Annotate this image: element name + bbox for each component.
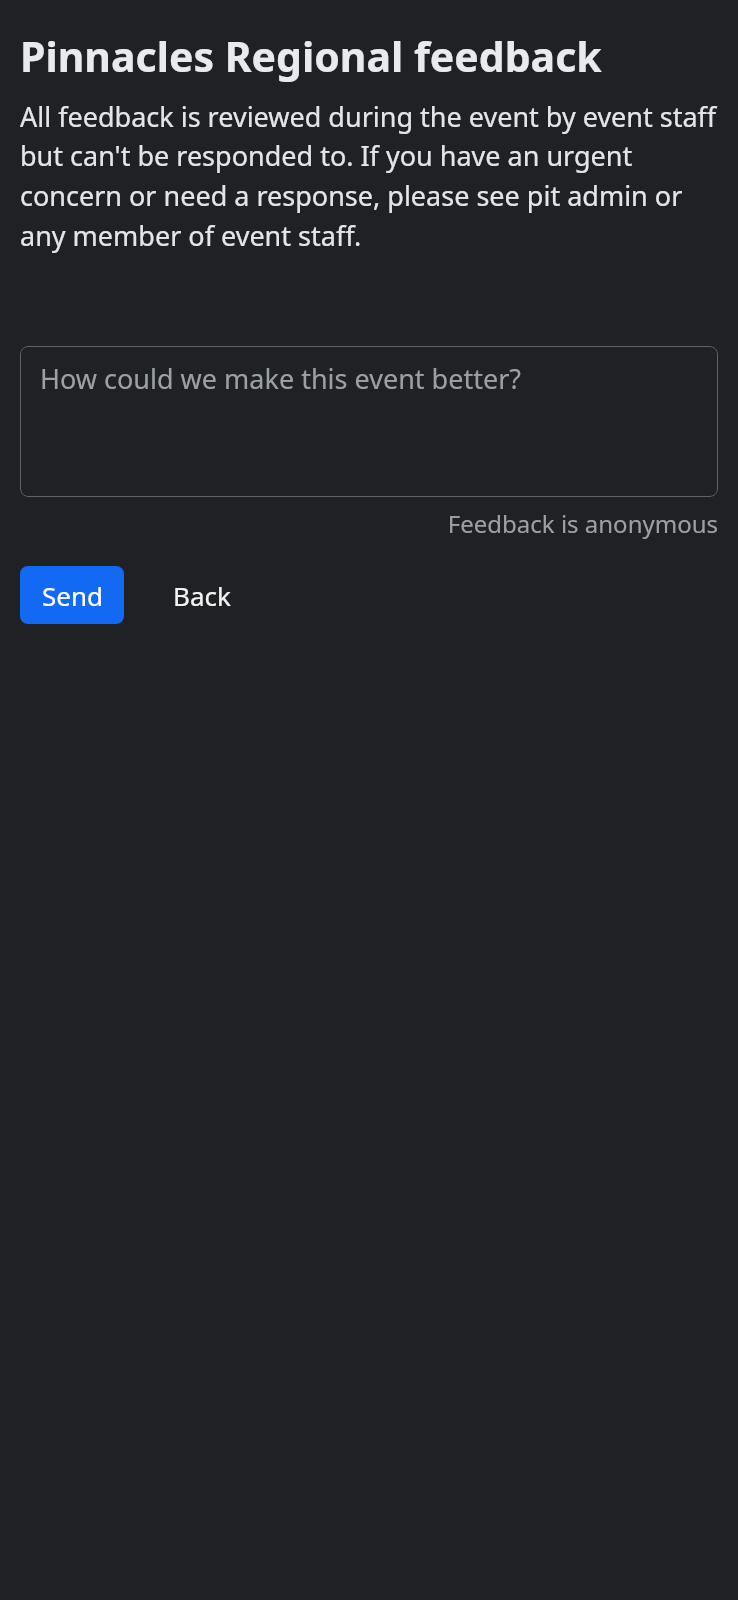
staticText: Feedback is anonymous bbox=[20, 507, 718, 540]
button[interactable]: Back bbox=[153, 566, 251, 624]
staticText: Pinnacles Regional feedback bbox=[20, 28, 602, 84]
staticText: Send bbox=[42, 578, 103, 613]
staticText: How could we make this event better? bbox=[40, 360, 522, 397]
button[interactable]: Send bbox=[20, 566, 124, 624]
staticText: All feedback is reviewed during the even… bbox=[20, 98, 718, 254]
button[interactable]: How could we make this event better? bbox=[20, 346, 718, 497]
staticText: Back bbox=[173, 578, 231, 613]
